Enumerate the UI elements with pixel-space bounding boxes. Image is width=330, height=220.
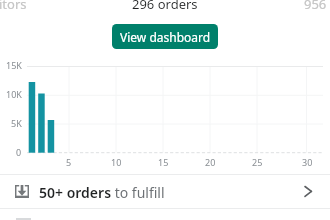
staticText: 10	[111, 156, 122, 168]
staticText: 5K	[11, 117, 22, 129]
staticText: 50+ orders to fulfill	[39, 183, 165, 202]
staticText: 956	[304, 0, 327, 13]
staticText: 296 orders	[132, 0, 198, 13]
staticText: 15	[158, 156, 169, 168]
button[interactable]: 50+ orders to fulfill	[0, 175, 330, 209]
staticText: 0	[16, 146, 22, 158]
button[interactable]: View dashboard	[112, 24, 218, 49]
staticText: 15K	[6, 59, 22, 71]
other: Open orders to fulfill	[304, 185, 313, 197]
staticText: itors	[0, 0, 27, 13]
staticText: 10K	[6, 88, 22, 100]
staticText: 25	[252, 156, 263, 168]
staticText: 20	[205, 156, 216, 168]
staticText: 30	[302, 156, 313, 168]
staticText: View dashboard	[120, 29, 211, 45]
staticText: 5	[66, 156, 72, 168]
